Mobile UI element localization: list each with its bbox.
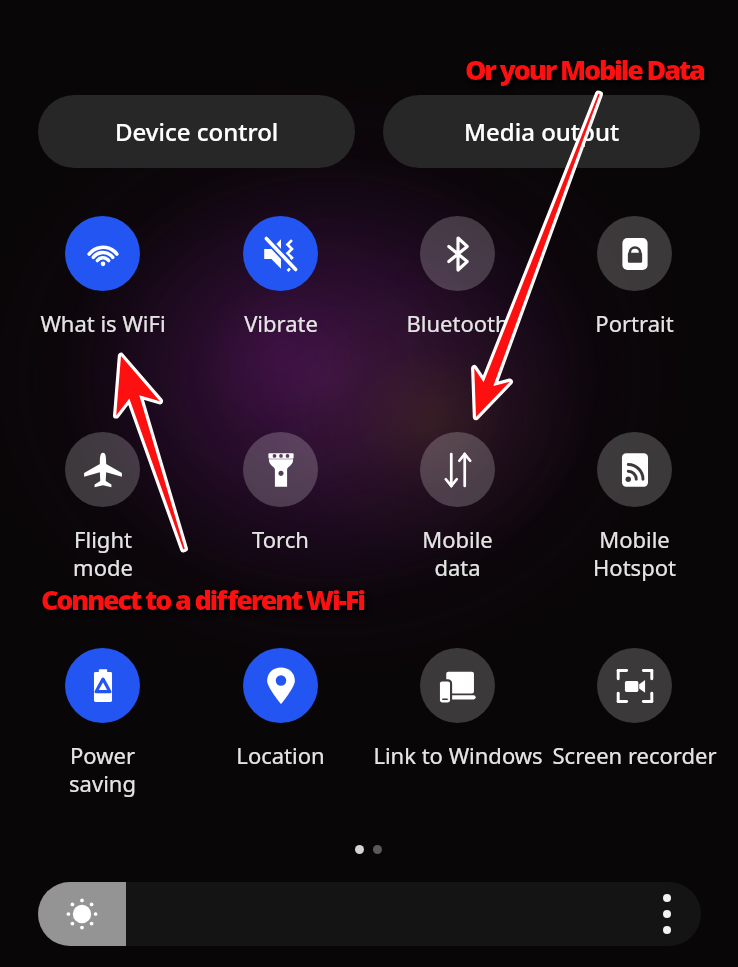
button[interactable]: Screen recorder [546, 634, 723, 806]
staticText: Torch [252, 524, 309, 554]
staticText: Bluetooth [406, 308, 509, 338]
staticText: Connect to a different Wi-Fi [41, 581, 364, 618]
staticText: Flight mode [73, 524, 133, 582]
staticText: Or your Mobile Data [465, 51, 704, 88]
staticText: Mobile Hotspot [593, 524, 676, 582]
button[interactable]: Power saving [14, 634, 191, 806]
button[interactable]: Torch [192, 418, 369, 590]
staticText: Link to Windows [373, 740, 543, 770]
button[interactable]: Media output [383, 95, 700, 168]
staticText: Device control [115, 115, 279, 148]
staticText: Vibrate [244, 308, 318, 338]
button[interactable]: Bluetooth [369, 202, 546, 374]
button[interactable]: Device control [38, 95, 355, 168]
button[interactable]: Vibrate [192, 202, 369, 374]
button[interactable]: What is WiFi [14, 202, 191, 374]
button[interactable]: Portrait [546, 202, 723, 374]
staticText: Mobile data [422, 524, 493, 582]
staticText: Screen recorder [552, 740, 717, 770]
staticText: Location [236, 740, 325, 770]
staticText: Portrait [595, 308, 674, 338]
button[interactable]: Brightness slider [38, 882, 701, 946]
button[interactable]: More options [633, 882, 701, 946]
staticText: Power saving [69, 740, 136, 798]
button[interactable]: Mobile data [369, 418, 546, 590]
button[interactable]: Flight mode [14, 418, 191, 590]
button[interactable]: Mobile Hotspot [546, 418, 723, 590]
staticText: Media output [464, 115, 620, 148]
staticText: What is WiFi [40, 308, 166, 338]
button[interactable]: Link to Windows [369, 634, 546, 806]
button[interactable]: Location [192, 634, 369, 806]
